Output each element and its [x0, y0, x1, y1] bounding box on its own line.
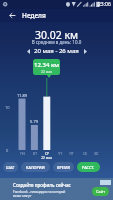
- staticText: 0: [6, 148, 9, 153]
- staticText: ВРЕМЯ: [57, 165, 70, 170]
- button[interactable]: КАЛОРИИ: [21, 162, 50, 172]
- button[interactable]: Сайт: [92, 187, 109, 196]
- staticText: 11.89: [14, 93, 30, 98]
- staticText: РАССТ.: [82, 165, 95, 170]
- staticText: СБ: [83, 152, 87, 156]
- staticText: Неделя: [22, 11, 46, 20]
- staticText: 22 мая: [41, 69, 52, 73]
- staticText: 23:06: [98, 1, 111, 8]
- staticText: 5.79: [26, 119, 42, 124]
- button[interactable]: Back: [5, 9, 19, 22]
- staticText: В среднем в день: 10.0: [0, 39, 113, 45]
- button[interactable]: ВРЕМЯ: [53, 162, 74, 172]
- staticText: ЧТ: [58, 152, 62, 156]
- staticText: ШАГ: [6, 165, 15, 170]
- button[interactable]: ШАГ: [3, 162, 18, 172]
- staticText: 20 мая - 26 мая: [34, 47, 79, 55]
- staticText: Создайте профиль сейчас: [13, 182, 71, 188]
- staticText: 30.02 км: [0, 28, 113, 42]
- staticText: КАЛОРИИ: [26, 165, 45, 170]
- staticText: ПН: [20, 152, 25, 156]
- staticText: СР: [45, 152, 49, 156]
- staticText: ВС: [94, 152, 99, 156]
- button[interactable]: РАССТ.: [77, 162, 100, 172]
- button[interactable]: 12.34 км: [33, 59, 60, 75]
- staticText: 10: [5, 105, 10, 110]
- staticText: ВТ: [33, 152, 37, 156]
- button[interactable]: Previous week: [22, 45, 34, 57]
- button[interactable]: Next week: [79, 45, 91, 57]
- staticText: вами могут: [13, 193, 32, 197]
- staticText: 22 мая: [41, 156, 52, 160]
- staticText: Facebook - площадка на которой: [13, 189, 66, 193]
- staticText: Сайт: [96, 189, 106, 194]
- staticText: 12.34 км: [34, 61, 59, 69]
- staticText: ПТ: [69, 152, 74, 156]
